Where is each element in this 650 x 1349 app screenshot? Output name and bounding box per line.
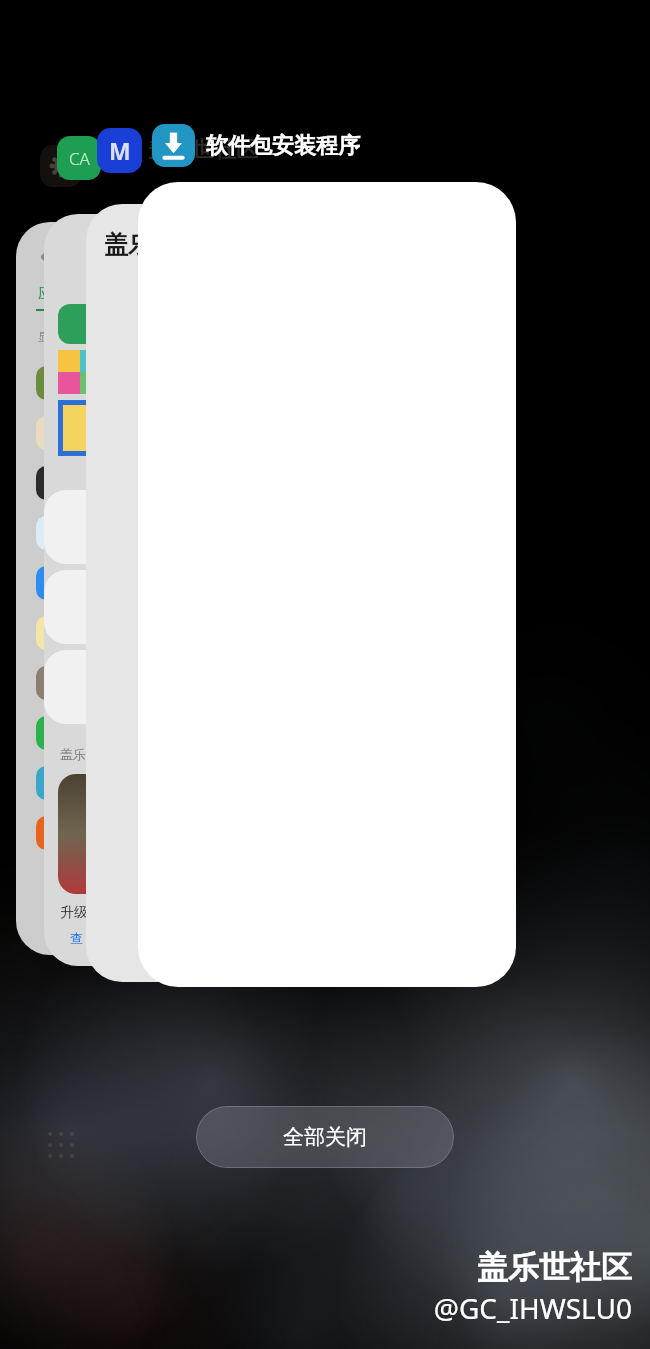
staticText: 盖乐世 — [60, 746, 99, 762]
staticText: 盖乐世社区 — [477, 1248, 632, 1287]
staticText: 盖乐 — [104, 230, 152, 260]
button[interactable]: 应 — [16, 222, 166, 955]
staticText: 应 — [38, 284, 53, 303]
staticText: M — [109, 135, 131, 166]
button[interactable]: 全部关闭 — [196, 1106, 454, 1168]
staticText: 盖乐世社区 — [148, 136, 258, 164]
staticText: 升级 — [60, 904, 88, 922]
staticText: @GC_IHWSLU0 — [433, 1289, 632, 1327]
staticText: 查 — [70, 930, 83, 946]
staticText: 软件包安装程序 — [206, 132, 360, 160]
staticText: 显示 — [38, 329, 62, 344]
button[interactable]: 通知 — [44, 214, 194, 966]
button[interactable]: 应用程序列表 — [44, 1128, 78, 1162]
staticText: 全部关闭 — [283, 1124, 367, 1150]
button[interactable]: 软件包安装程序 任务卡片 — [138, 182, 516, 987]
staticText: CA — [69, 147, 90, 170]
button[interactable]: 盖乐 — [86, 204, 236, 982]
